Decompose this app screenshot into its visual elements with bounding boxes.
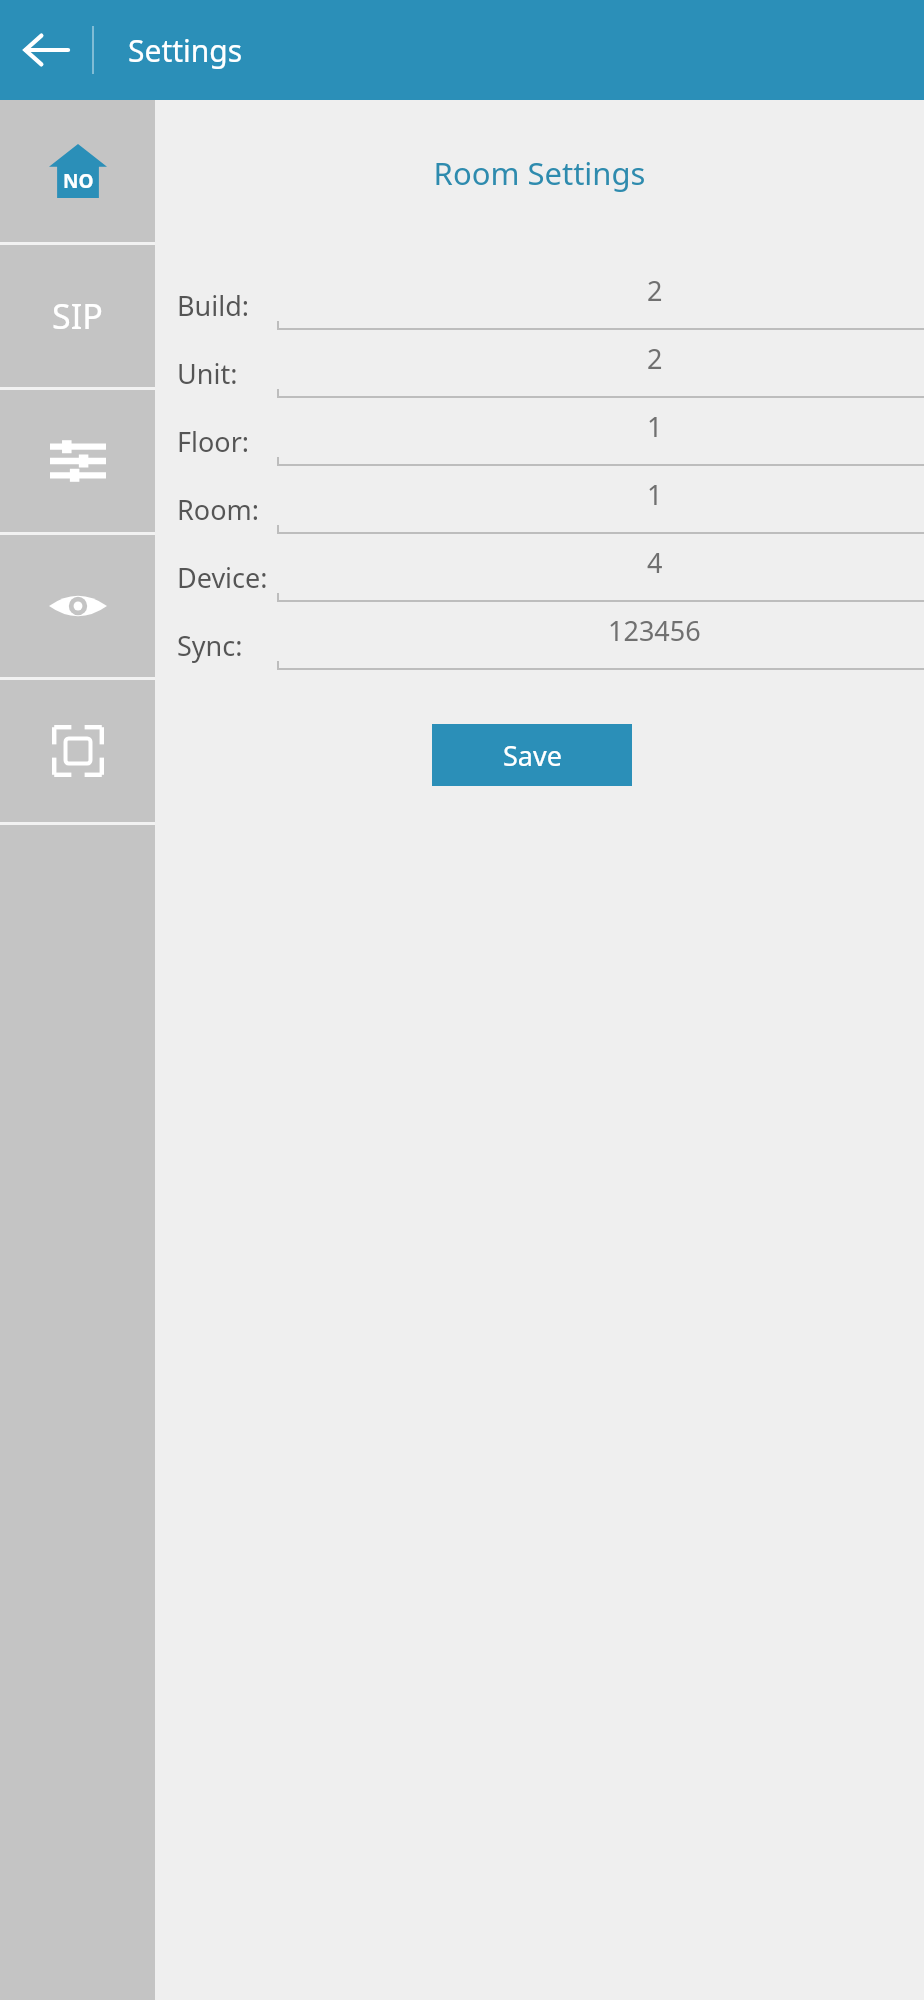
staticText: SIP [52, 293, 103, 339]
button[interactable]: Room: [155, 468, 924, 536]
button[interactable]: Back [0, 0, 92, 100]
staticText: Device: [177, 559, 268, 596]
staticText: 2 [647, 340, 663, 377]
staticText: 4 [647, 544, 663, 581]
button[interactable]: Save [432, 724, 632, 786]
button[interactable]: Unit: [155, 332, 924, 400]
staticText: Room Settings [155, 152, 924, 194]
staticText: 1 [647, 408, 663, 445]
staticText: Save [503, 737, 562, 774]
button[interactable]: Home [0, 100, 155, 242]
button[interactable]: Device: [155, 536, 924, 604]
staticText: 2 [647, 272, 663, 309]
button[interactable]: Preview [0, 535, 155, 677]
button[interactable]: Build: [155, 264, 924, 332]
staticText: Floor: [177, 423, 250, 460]
button[interactable]: Floor: [155, 400, 924, 468]
button[interactable]: Advanced settings [0, 390, 155, 532]
staticText: Settings [128, 30, 243, 71]
button[interactable]: Scan [0, 680, 155, 822]
staticText: 123456 [608, 612, 701, 649]
staticText: 1 [647, 476, 663, 513]
staticText: Unit: [177, 355, 238, 392]
staticText: Room: [177, 491, 259, 528]
staticText: NO [63, 168, 94, 194]
staticText: Sync: [177, 627, 243, 664]
staticText: Build: [177, 287, 250, 324]
button[interactable]: Sync: [155, 604, 924, 672]
button[interactable]: SIP [0, 245, 155, 387]
